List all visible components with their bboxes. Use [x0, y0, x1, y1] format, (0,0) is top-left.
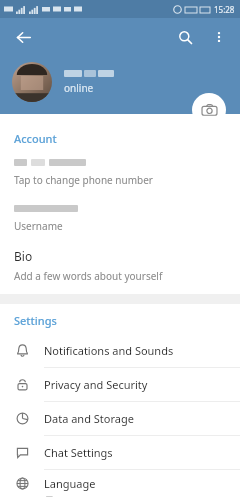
button[interactable]: Privacy and Security	[0, 368, 240, 401]
button[interactable]: Bio	[0, 248, 240, 289]
button[interactable]: Search	[168, 20, 202, 54]
staticText: Chat Settings	[44, 445, 113, 460]
button[interactable]: Language	[0, 470, 240, 497]
staticText: Settings	[14, 313, 57, 328]
staticText: Username	[14, 219, 63, 233]
button[interactable]: Change profile photo	[192, 93, 226, 127]
staticText: online	[64, 81, 94, 95]
button[interactable]: Back	[6, 20, 40, 54]
staticText: Tap to change phone number	[14, 173, 153, 187]
staticText: Notifications and Sounds	[44, 343, 174, 358]
staticText: Language	[44, 476, 96, 491]
button[interactable]: More options	[202, 20, 236, 54]
staticText: Account	[14, 131, 57, 146]
staticText: 15:28	[214, 4, 235, 15]
staticText: Add a few words about yourself	[14, 269, 163, 283]
button[interactable]: Notifications and Sounds	[0, 334, 240, 367]
staticText: Privacy and Security	[44, 377, 148, 392]
staticText: Bio	[14, 248, 33, 264]
button[interactable]: Username	[0, 205, 240, 238]
button[interactable]: Chat Settings	[0, 436, 240, 469]
button[interactable]: online	[12, 62, 114, 102]
staticText: Data and Storage	[44, 411, 134, 426]
button[interactable]: Data and Storage	[0, 402, 240, 435]
button[interactable]: Tap to change phone number	[0, 158, 240, 192]
